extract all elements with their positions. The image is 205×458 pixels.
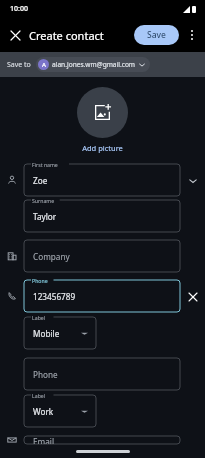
button[interactable]: Email (24, 436, 180, 444)
button[interactable]: Phone (24, 280, 180, 312)
staticText: Mobile (33, 328, 60, 339)
staticText: First name (32, 161, 58, 168)
button[interactable]: More options (182, 25, 202, 45)
staticText: Save (147, 29, 166, 41)
button[interactable]: Phone (24, 358, 180, 390)
staticText: 10:00 (10, 4, 28, 14)
button[interactable]: Close (5, 25, 25, 45)
staticText: Label (32, 314, 46, 321)
button[interactable]: Add picture (77, 87, 128, 138)
button[interactable]: Surname (24, 200, 180, 232)
button[interactable]: Expand name fields (180, 168, 205, 193)
staticText: Work (33, 406, 54, 417)
staticText: Create contact (29, 28, 104, 43)
staticText: Email (33, 436, 55, 444)
button[interactable]: Save (134, 25, 179, 45)
staticText: Taylor (33, 211, 57, 222)
button[interactable]: Label (24, 317, 96, 349)
button[interactable]: Clear phone number (180, 284, 205, 309)
button[interactable]: Label (24, 395, 96, 427)
button[interactable]: Add picture (0, 143, 205, 153)
staticText: Surname (32, 197, 55, 204)
staticText: Label (32, 392, 46, 399)
staticText: 123456789 (33, 291, 76, 302)
button[interactable]: Company (24, 240, 180, 272)
button[interactable]: A (36, 57, 150, 72)
button[interactable]: First name (24, 164, 180, 196)
staticText: Add picture (82, 143, 123, 153)
staticText: alan.jones.wm@gmail.com (52, 60, 136, 69)
staticText: Zoe (33, 175, 48, 186)
staticText: A (42, 61, 46, 69)
staticText: Company (33, 251, 70, 262)
staticText: Phone (33, 369, 58, 380)
staticText: Save to (7, 60, 31, 70)
staticText: Phone (32, 277, 48, 284)
